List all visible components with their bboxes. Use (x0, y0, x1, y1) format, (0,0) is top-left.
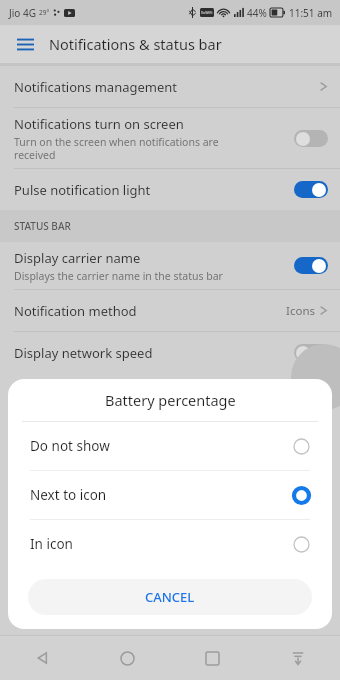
staticText: STATUS BAR (14, 219, 71, 233)
button[interactable]: Display network speed (0, 332, 340, 373)
staticText: Battery percentage (105, 390, 236, 410)
button[interactable]: Display carrier name (0, 242, 340, 289)
button[interactable]: Toggle off (294, 344, 328, 361)
staticText: Display carrier name (14, 249, 141, 267)
button[interactable]: Open navigation menu (9, 28, 41, 60)
button[interactable]: Back (0, 636, 85, 680)
staticText: Icons (286, 303, 315, 319)
button[interactable]: Notification method (0, 290, 340, 331)
staticText: VoWiFi (201, 10, 213, 15)
staticText: Next to icon (30, 486, 293, 504)
staticText: Notification method (14, 302, 137, 320)
staticText: Notifications & status bar (49, 34, 222, 54)
button[interactable]: Toggle on (294, 257, 328, 274)
button[interactable]: Hide navigation bar (255, 636, 340, 680)
button[interactable]: In icon (8, 520, 332, 568)
button[interactable]: Notifications management (0, 66, 340, 107)
staticText: Turn on the screen when notifications ar… (14, 135, 219, 162)
button[interactable]: Home (85, 636, 170, 680)
button[interactable]: Next to icon (8, 471, 332, 520)
button[interactable]: Recent apps (170, 636, 255, 680)
staticText: In icon (30, 535, 293, 553)
button[interactable]: Do not show (8, 422, 332, 471)
staticText: Do not show (30, 437, 293, 455)
staticText: Pulse notification light (14, 181, 151, 199)
button[interactable]: CANCEL (28, 579, 312, 615)
staticText: Displays the carrier name in the status … (14, 269, 223, 283)
staticText: CANCEL (145, 588, 195, 606)
staticText: Notifications management (14, 78, 178, 96)
staticText: 29° (39, 8, 50, 17)
button[interactable]: Toggle on (294, 181, 328, 198)
button[interactable]: Toggle off (294, 130, 328, 147)
staticText: 44% (247, 6, 267, 20)
staticText: 11:51 am (289, 6, 333, 20)
staticText: Jio 4G (9, 6, 36, 20)
staticText: Display network speed (14, 344, 153, 362)
button[interactable]: Notifications turn on screen (0, 108, 340, 168)
button[interactable]: Pulse notification light (0, 169, 340, 210)
staticText: Notifications turn on screen (14, 115, 184, 133)
